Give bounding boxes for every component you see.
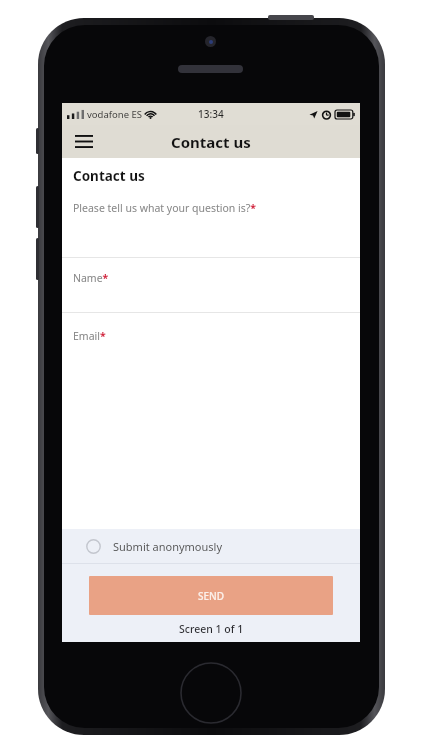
staticText: SEND [198, 589, 225, 603]
staticText: Contact us [171, 132, 251, 152]
staticText: Contact us [73, 167, 145, 185]
button[interactable]: Submit anonymously [62, 529, 360, 563]
staticText: 13:34 [198, 107, 224, 121]
staticText: Name* [73, 271, 109, 285]
staticText: vodafone ES [87, 108, 142, 121]
staticText: Please tell us what your question is?* [73, 201, 257, 215]
button[interactable]: Open navigation menu [62, 125, 106, 158]
button[interactable]: Email* [62, 313, 360, 529]
button[interactable]: Name* [62, 258, 360, 312]
button[interactable]: SEND [89, 576, 333, 615]
staticText: Screen 1 of 1 [179, 622, 244, 636]
staticText: Email* [73, 329, 106, 343]
staticText: Submit anonymously [113, 539, 223, 554]
button[interactable]: Please tell us what your question is?* [62, 201, 360, 257]
